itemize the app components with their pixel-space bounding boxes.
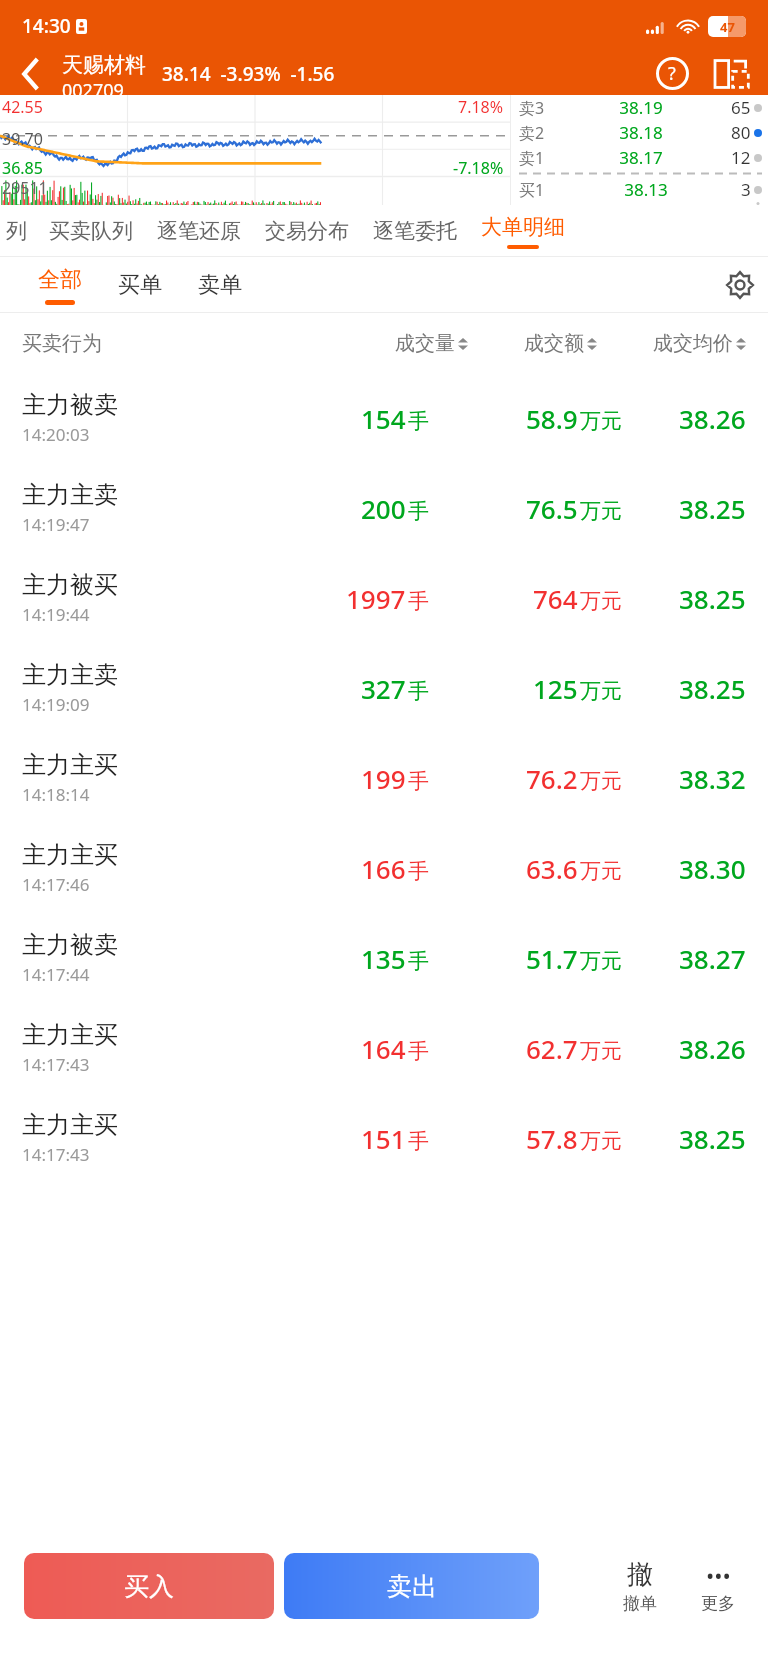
staticText: 135 bbox=[361, 941, 406, 976]
staticText: 7.18% bbox=[458, 96, 504, 118]
button[interactable]: 返回 bbox=[0, 52, 62, 95]
button[interactable]: ••• bbox=[678, 1559, 758, 1614]
button[interactable]: 卖出 bbox=[284, 1553, 539, 1619]
staticText: 撤单 bbox=[623, 1593, 657, 1614]
button[interactable]: 主力主买 bbox=[0, 1093, 768, 1183]
staticText: 38.13 bbox=[551, 178, 741, 201]
staticText: 万元 bbox=[580, 408, 622, 434]
staticText: 14:17:43 bbox=[22, 1143, 90, 1166]
staticText: 主力主卖 bbox=[22, 660, 118, 690]
staticText: 38.27 bbox=[679, 941, 746, 976]
staticText: 14:20:03 bbox=[22, 423, 90, 446]
button[interactable]: 买1 bbox=[519, 177, 762, 202]
button[interactable]: 主力主卖 bbox=[0, 643, 768, 733]
staticText: 38.25 bbox=[679, 671, 746, 706]
staticText: 166 bbox=[361, 851, 406, 886]
staticText: 主力主买 bbox=[22, 1110, 118, 1140]
staticText: 327 bbox=[361, 671, 406, 706]
button[interactable]: 买单 bbox=[100, 257, 180, 313]
staticText: 撤 bbox=[627, 1558, 653, 1591]
button[interactable]: 主力主买 bbox=[0, 823, 768, 913]
staticText: 卖出 bbox=[387, 1571, 437, 1602]
staticText: 买1 bbox=[519, 179, 545, 201]
staticText: 卖单 bbox=[198, 271, 242, 299]
staticText: 逐笔委托 bbox=[373, 218, 457, 244]
button[interactable]: 列 bbox=[0, 205, 33, 257]
staticText: 万元 bbox=[580, 498, 622, 524]
button[interactable]: 逐笔还原 bbox=[145, 205, 253, 257]
button[interactable]: 逐笔委托 bbox=[361, 205, 469, 257]
staticText: ••• bbox=[706, 1560, 731, 1590]
staticText: 14:19:47 bbox=[22, 513, 90, 536]
button[interactable]: 撤 bbox=[602, 1558, 678, 1614]
staticText: 14:19:09 bbox=[22, 693, 90, 716]
staticText: 151 bbox=[361, 1121, 406, 1156]
button[interactable]: 主力被卖 bbox=[0, 913, 768, 1003]
staticText: 51.7 bbox=[526, 941, 578, 976]
button[interactable]: 交易分布 bbox=[253, 205, 361, 257]
staticText: -7.18% bbox=[453, 157, 504, 179]
button[interactable]: 主力被买 bbox=[0, 553, 768, 643]
staticText: ? bbox=[668, 61, 676, 86]
staticText: 手 bbox=[408, 588, 429, 614]
staticText: 手 bbox=[408, 1128, 429, 1154]
button[interactable]: 切换布局 bbox=[704, 52, 760, 95]
staticText: 主力被买 bbox=[22, 570, 118, 600]
staticText: 38.26 bbox=[679, 401, 746, 436]
staticText: 主力主买 bbox=[22, 1020, 118, 1050]
staticText: 14:30 bbox=[22, 13, 71, 39]
staticText: 38.25 bbox=[679, 1121, 746, 1156]
staticText: 38.25 bbox=[679, 581, 746, 616]
staticText: 58.9 bbox=[526, 401, 578, 436]
staticText: 14:17:44 bbox=[22, 963, 90, 986]
staticText: 买卖队列 bbox=[49, 218, 133, 244]
staticText: 成交量 bbox=[395, 331, 455, 356]
staticText: 万元 bbox=[580, 1038, 622, 1064]
button[interactable]: 卖3 bbox=[519, 95, 762, 120]
staticText: 手 bbox=[408, 768, 429, 794]
button[interactable]: 大单明细 bbox=[469, 205, 577, 257]
staticText: 卖3 bbox=[519, 97, 545, 119]
staticText: 38.26 bbox=[679, 1031, 746, 1066]
staticText: 买单 bbox=[118, 271, 162, 299]
staticText: 天赐材料 bbox=[62, 52, 146, 78]
staticText: 主力被卖 bbox=[22, 930, 118, 960]
button[interactable]: 买卖队列 bbox=[37, 205, 145, 257]
button[interactable]: 买入 bbox=[24, 1553, 274, 1619]
staticText: 万元 bbox=[580, 768, 622, 794]
staticText: 主力被卖 bbox=[22, 390, 118, 420]
button[interactable]: 主力被卖 bbox=[0, 373, 768, 463]
staticText: 手 bbox=[408, 498, 429, 524]
button[interactable]: 设置 bbox=[712, 257, 768, 313]
button[interactable]: 主力主买 bbox=[0, 1003, 768, 1093]
button[interactable]: 主力主买 bbox=[0, 733, 768, 823]
staticText: 39.70 bbox=[2, 128, 43, 150]
button[interactable]: 卖2 bbox=[519, 120, 762, 145]
staticText: 主力主买 bbox=[22, 840, 118, 870]
staticText: 逐笔还原 bbox=[157, 218, 241, 244]
staticText: 万元 bbox=[580, 588, 622, 614]
staticText: 手 bbox=[408, 1038, 429, 1064]
button[interactable]: 全部 bbox=[20, 257, 100, 313]
button[interactable]: 买2 bbox=[519, 202, 762, 205]
button[interactable]: 帮助 bbox=[644, 52, 700, 95]
button[interactable]: 主力主卖 bbox=[0, 463, 768, 553]
staticText: 万元 bbox=[580, 678, 622, 704]
button[interactable]: 卖1 bbox=[519, 145, 762, 170]
staticText: 164 bbox=[361, 1031, 406, 1066]
staticText: 47 bbox=[720, 18, 735, 36]
staticText: 全部 bbox=[38, 266, 82, 294]
staticText: 12 bbox=[731, 146, 751, 169]
staticText: 手 bbox=[408, 678, 429, 704]
staticText: 76.5 bbox=[526, 491, 578, 526]
staticText: 200 bbox=[361, 491, 406, 526]
staticText: 14:17:46 bbox=[22, 873, 90, 896]
staticText: 76.2 bbox=[526, 761, 578, 796]
staticText: 154 bbox=[361, 401, 406, 436]
staticText: 更多 bbox=[701, 1593, 735, 1614]
staticText: 手 bbox=[408, 408, 429, 434]
staticText: 万元 bbox=[580, 858, 622, 884]
button[interactable]: 卖单 bbox=[180, 257, 260, 313]
